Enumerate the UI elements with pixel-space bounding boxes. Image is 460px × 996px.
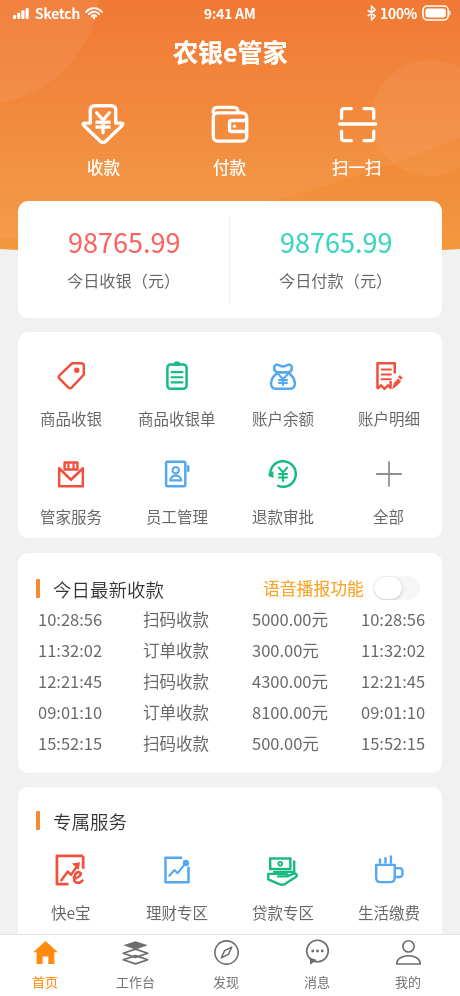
button[interactable]: 发现 <box>181 935 272 996</box>
button[interactable]: 12:21:45 <box>18 665 442 696</box>
staticText: 09:01:10 <box>361 700 426 724</box>
button[interactable]: 贷款专区 <box>230 854 336 923</box>
button[interactable]: 98765.99 <box>230 201 442 318</box>
staticText: 专属服务 <box>53 808 128 832</box>
staticText: 98765.99 <box>68 222 181 261</box>
button[interactable]: 管家服务 <box>18 458 124 527</box>
staticText: 11:32:02 <box>38 638 143 662</box>
button[interactable]: 语音播报功能 <box>263 576 420 600</box>
staticText: 今日收银（元） <box>67 268 181 291</box>
staticText: 8100.00元 <box>252 700 361 724</box>
staticText: 9:41 AM <box>204 3 256 23</box>
staticText: 管家服务 <box>40 505 103 527</box>
staticText: 5000.00元 <box>252 607 361 631</box>
button[interactable]: 15:52:15 <box>18 727 442 758</box>
button[interactable]: 商品收银 <box>18 360 124 429</box>
staticText: 快e宝 <box>51 901 91 923</box>
button[interactable]: 账户明细 <box>336 360 442 429</box>
staticText: 退款审批 <box>252 505 315 527</box>
button[interactable]: 消息 <box>272 935 363 996</box>
staticText: 发现 <box>213 972 240 991</box>
button[interactable]: 98765.99 <box>18 201 229 318</box>
staticText: Sketch <box>35 3 81 23</box>
staticText: 账户明细 <box>358 407 421 429</box>
button[interactable]: 快e宝 <box>18 854 124 923</box>
staticText: 今日最新收款 <box>53 576 165 600</box>
staticText: 农银e管家 <box>173 33 288 65</box>
button[interactable]: 工作台 <box>90 935 181 996</box>
button[interactable]: 10:28:56 <box>18 603 442 634</box>
button[interactable]: 09:01:10 <box>18 696 442 727</box>
staticText: 付款 <box>213 155 246 179</box>
staticText: 12:21:45 <box>38 669 143 693</box>
button[interactable]: 扫一扫 <box>293 102 420 179</box>
button[interactable]: 账户余额 <box>230 360 336 429</box>
staticText: 300.00元 <box>252 638 361 662</box>
staticText: 工作台 <box>116 972 156 991</box>
staticText: 订单收款 <box>143 638 252 662</box>
staticText: 扫码收款 <box>143 669 252 693</box>
staticText: 15:52:15 <box>361 731 426 755</box>
button[interactable]: 11:32:02 <box>18 634 442 665</box>
staticText: 订单收款 <box>143 700 252 724</box>
button[interactable]: 付款 <box>166 102 293 179</box>
staticText: 15:52:15 <box>38 731 143 755</box>
staticText: 商品收银 <box>40 407 103 429</box>
button[interactable]: 收款 <box>40 102 166 179</box>
staticText: 11:32:02 <box>361 638 426 662</box>
staticText: 员工管理 <box>146 505 209 527</box>
staticText: 500.00元 <box>252 731 361 755</box>
staticText: 我的 <box>395 972 422 991</box>
staticText: 10:28:56 <box>38 607 143 631</box>
staticText: 理财专区 <box>146 901 209 923</box>
staticText: 收款 <box>87 155 120 179</box>
staticText: 贷款专区 <box>252 901 315 923</box>
staticText: 全部 <box>373 505 405 527</box>
staticText: 消息 <box>304 972 331 991</box>
button[interactable]: 退款审批 <box>230 458 336 527</box>
staticText: 今日付款（元） <box>279 268 393 291</box>
button[interactable]: 全部 <box>336 458 442 527</box>
staticText: 09:01:10 <box>38 700 143 724</box>
staticText: 生活缴费 <box>358 901 421 923</box>
staticText: 100% <box>380 3 418 23</box>
button[interactable]: 理财专区 <box>124 854 230 923</box>
staticText: 12:21:45 <box>361 669 426 693</box>
staticText: 首页 <box>32 972 59 991</box>
button[interactable]: 首页 <box>0 935 90 996</box>
staticText: 4300.00元 <box>252 669 361 693</box>
staticText: 语音播报功能 <box>263 576 364 600</box>
staticText: 扫一扫 <box>332 155 382 179</box>
staticText: 账户余额 <box>252 407 315 429</box>
staticText: 商品收银单 <box>138 407 216 429</box>
button[interactable]: 商品收银单 <box>124 360 230 429</box>
staticText: 10:28:56 <box>361 607 426 631</box>
button[interactable]: 员工管理 <box>124 458 230 527</box>
staticText: 扫码收款 <box>143 731 252 755</box>
button[interactable]: 生活缴费 <box>336 854 442 923</box>
button[interactable]: 我的 <box>363 935 454 996</box>
staticText: 扫码收款 <box>143 607 252 631</box>
staticText: 98765.99 <box>280 222 393 261</box>
